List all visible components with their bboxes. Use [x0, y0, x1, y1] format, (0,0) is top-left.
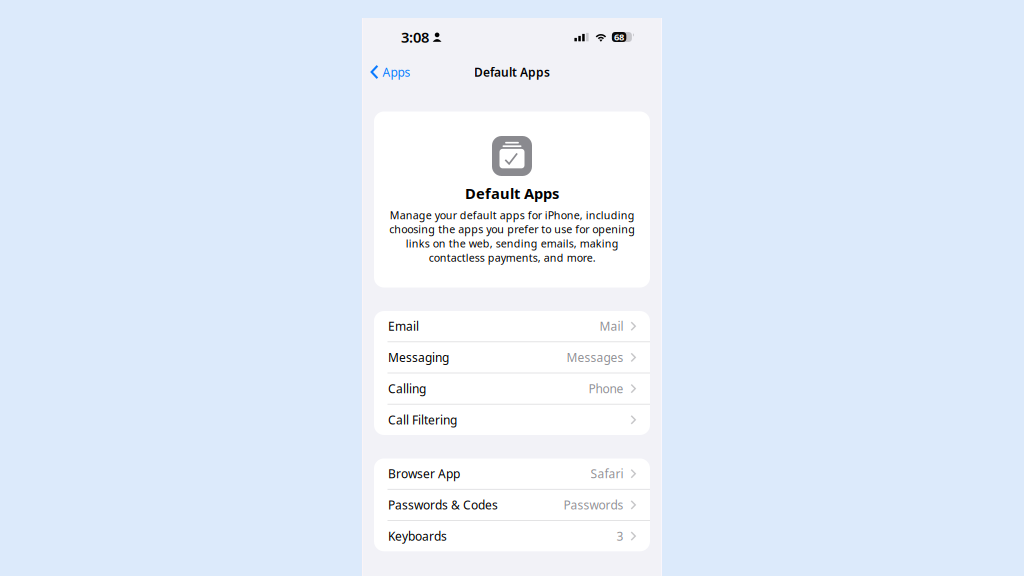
button[interactable]: Call Filtering — [374, 405, 650, 435]
staticText: Safari — [590, 466, 623, 482]
staticText: Manage your default apps for iPhone, inc… — [389, 208, 635, 265]
staticText: Default Apps — [474, 64, 550, 80]
staticText: Messaging — [388, 349, 449, 365]
button[interactable]: Messaging — [374, 342, 650, 373]
staticText: Phone — [588, 381, 623, 396]
button[interactable]: Passwords & Codes — [374, 490, 650, 520]
staticText: Email — [388, 318, 419, 334]
staticText: Browser App — [388, 466, 460, 482]
staticText: Calling — [388, 381, 426, 396]
staticText: 3:08 — [401, 27, 429, 47]
staticText: Messages — [566, 349, 623, 365]
staticText: Passwords & Codes — [388, 497, 498, 513]
button[interactable]: Email — [374, 311, 650, 341]
button[interactable]: Back to Apps — [363, 58, 416, 86]
staticText: Call Filtering — [388, 412, 457, 428]
staticText: Mail — [599, 318, 623, 334]
staticText: 68 — [614, 31, 624, 43]
staticText: Apps — [382, 64, 410, 80]
staticText: Keyboards — [388, 528, 447, 544]
staticText: 3 — [616, 528, 623, 544]
button[interactable]: Browser App — [374, 458, 650, 489]
staticText: Passwords — [563, 497, 623, 513]
button[interactable]: Keyboards — [374, 521, 650, 551]
staticText: Default Apps — [465, 183, 559, 203]
button[interactable]: Calling — [374, 373, 650, 404]
